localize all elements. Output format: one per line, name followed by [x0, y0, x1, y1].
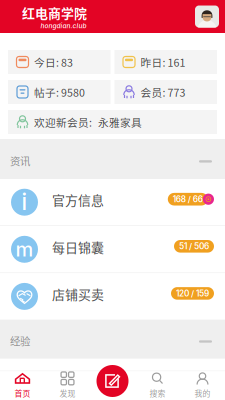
- staticText: 欢迎新会员: 永雅家具: [34, 114, 142, 130]
- button[interactable]: 发现: [45, 371, 90, 400]
- staticText: m: [15, 237, 33, 261]
- staticText: 会员: 773: [140, 84, 185, 100]
- button[interactable]: 我的: [180, 371, 225, 400]
- staticText: 51 / 506: [179, 241, 209, 251]
- button[interactable]: Compose: [96, 365, 128, 397]
- button[interactable]: m: [0, 226, 225, 272]
- staticText: 我的: [194, 387, 210, 399]
- staticText: 120 / 159: [176, 288, 209, 298]
- staticText: 昨日: 161: [140, 54, 185, 70]
- staticText: 发现: [59, 387, 75, 399]
- button[interactable]: 搜索: [135, 371, 180, 400]
- staticText: 红电商学院: [22, 3, 87, 22]
- staticText: 帖子: 9580: [34, 84, 85, 100]
- button[interactable]: 首页: [0, 371, 45, 400]
- staticText: 首页: [14, 387, 30, 399]
- staticText: 资讯: [10, 153, 30, 168]
- staticText: hongdian.club: [40, 22, 86, 30]
- staticText: 每日锦囊: [52, 237, 104, 256]
- button[interactable]: Profile: [195, 5, 219, 27]
- staticText: 官方信息: [52, 190, 104, 209]
- staticText: 店铺买卖: [52, 284, 104, 303]
- button[interactable]: 店铺买卖: [0, 273, 225, 320]
- staticText: 搜索: [149, 387, 165, 399]
- button[interactable]: i: [0, 179, 225, 225]
- staticText: 168 / 66: [173, 194, 203, 204]
- staticText: 经验: [10, 333, 30, 348]
- staticText: 今日: 83: [34, 54, 73, 70]
- staticText: i: [21, 188, 27, 215]
